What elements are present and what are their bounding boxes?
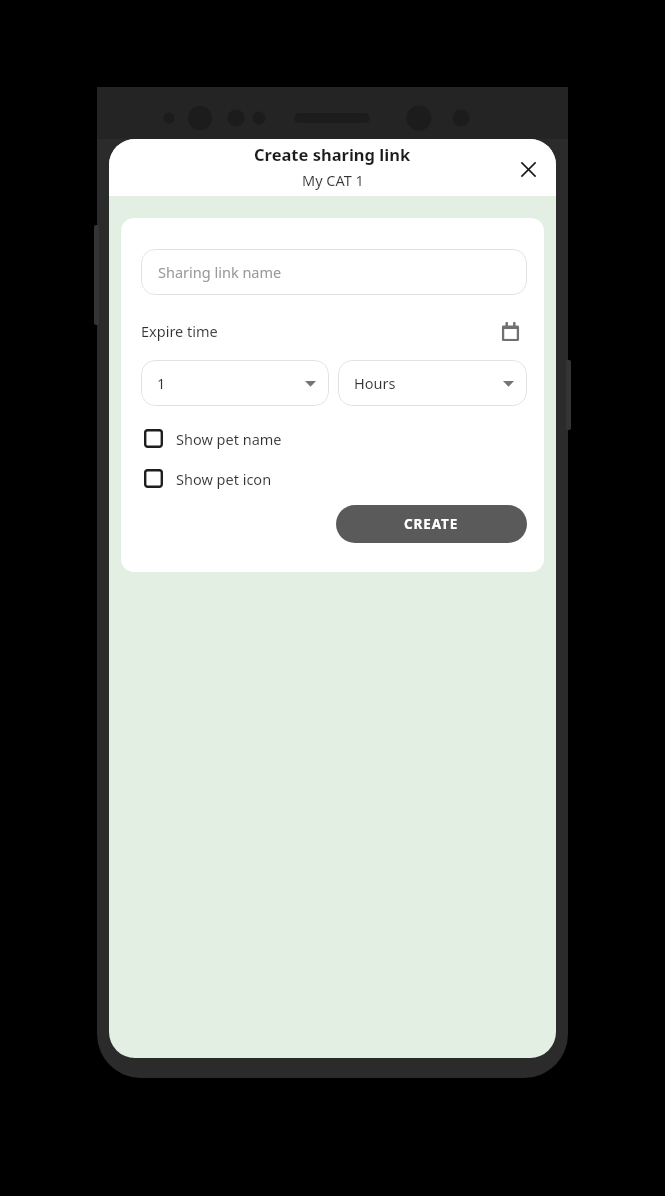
button[interactable]: Close <box>508 149 548 189</box>
button[interactable]: Show pet icon <box>141 465 527 492</box>
button[interactable]: Hours <box>338 360 527 406</box>
button[interactable]: Pick date <box>493 314 527 348</box>
button[interactable]: Sharing link name <box>141 249 527 295</box>
staticText: CREATE <box>404 515 459 533</box>
button[interactable]: 1 <box>141 360 329 406</box>
staticText: Show pet name <box>176 429 282 449</box>
staticText: Hours <box>354 373 396 393</box>
staticText: Show pet icon <box>176 469 272 489</box>
staticText: My CAT 1 <box>302 170 364 190</box>
staticText: Sharing link name <box>158 262 282 282</box>
button[interactable]: CREATE <box>336 505 527 543</box>
staticText: Create sharing link <box>254 143 411 165</box>
staticText: 1 <box>157 373 166 393</box>
staticText: Expire time <box>141 321 218 341</box>
button[interactable]: Show pet name <box>141 425 527 452</box>
